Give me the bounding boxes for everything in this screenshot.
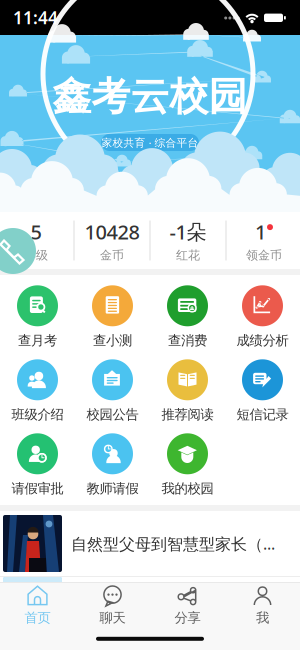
button[interactable]: 我的校园 bbox=[150, 430, 225, 500]
button[interactable]: 短信记录 bbox=[225, 356, 300, 426]
button[interactable]: 我 bbox=[225, 583, 300, 628]
button[interactable]: 查小测 bbox=[75, 282, 150, 352]
staticText: 查消费 bbox=[168, 332, 207, 349]
button[interactable]: 查消费 bbox=[150, 282, 225, 352]
staticText: 推荐阅读 bbox=[161, 406, 213, 423]
staticText: 首页 bbox=[24, 610, 50, 626]
staticText: 红花 bbox=[176, 248, 200, 263]
button[interactable]: 10428 bbox=[74, 212, 149, 269]
button[interactable]: 班级介绍 bbox=[0, 356, 75, 426]
button[interactable]: 分享 bbox=[150, 583, 225, 628]
staticText: 查月考 bbox=[18, 332, 57, 349]
staticText: 我的校园 bbox=[161, 480, 213, 497]
staticText: 领金币 bbox=[246, 248, 282, 263]
staticText: 分享 bbox=[174, 610, 200, 626]
staticText: 聊天 bbox=[99, 610, 125, 626]
button[interactable]: 首页 bbox=[0, 583, 75, 628]
button[interactable]: 成绩分析 bbox=[225, 282, 300, 352]
button[interactable] bbox=[0, 577, 300, 642]
staticText: 10428 bbox=[84, 218, 139, 245]
staticText: 我 bbox=[256, 610, 269, 626]
staticText: -1朵 bbox=[169, 218, 206, 245]
button[interactable]: 5 bbox=[0, 212, 73, 269]
button[interactable]: 拨打电话 bbox=[0, 228, 36, 274]
staticText: 1 bbox=[255, 218, 266, 245]
staticText: 教师请假 bbox=[86, 480, 138, 497]
button[interactable]: -1朵 bbox=[150, 212, 225, 269]
staticText: 查小测 bbox=[93, 332, 132, 349]
staticText: 家校共育 · 综合平台 bbox=[101, 135, 198, 150]
button[interactable]: 查月考 bbox=[0, 282, 75, 352]
staticText: 请假审批 bbox=[11, 480, 63, 497]
staticText: 自然型父母到智慧型家长（五） bbox=[71, 533, 280, 554]
staticText: 年级 bbox=[24, 248, 48, 263]
button[interactable]: 1 bbox=[226, 212, 300, 269]
button[interactable]: 聊天 bbox=[75, 583, 150, 628]
staticText: 11:44 bbox=[13, 6, 58, 29]
button[interactable]: 推荐阅读 bbox=[150, 356, 225, 426]
staticText: 班级介绍 bbox=[11, 406, 63, 423]
staticText: 鑫考云校园 bbox=[52, 73, 247, 120]
staticText: 校园公告 bbox=[86, 406, 138, 423]
button[interactable]: 请假审批 bbox=[0, 430, 75, 500]
staticText: 短信记录 bbox=[236, 406, 288, 423]
button[interactable]: 教师请假 bbox=[75, 430, 150, 500]
button[interactable]: 自然型父母到智慧型家长（五） bbox=[0, 511, 300, 576]
staticText: 成绩分析 bbox=[236, 332, 288, 349]
button[interactable]: 校园公告 bbox=[75, 356, 150, 426]
staticText: 金币 bbox=[100, 248, 124, 263]
staticText: 5 bbox=[30, 218, 41, 245]
